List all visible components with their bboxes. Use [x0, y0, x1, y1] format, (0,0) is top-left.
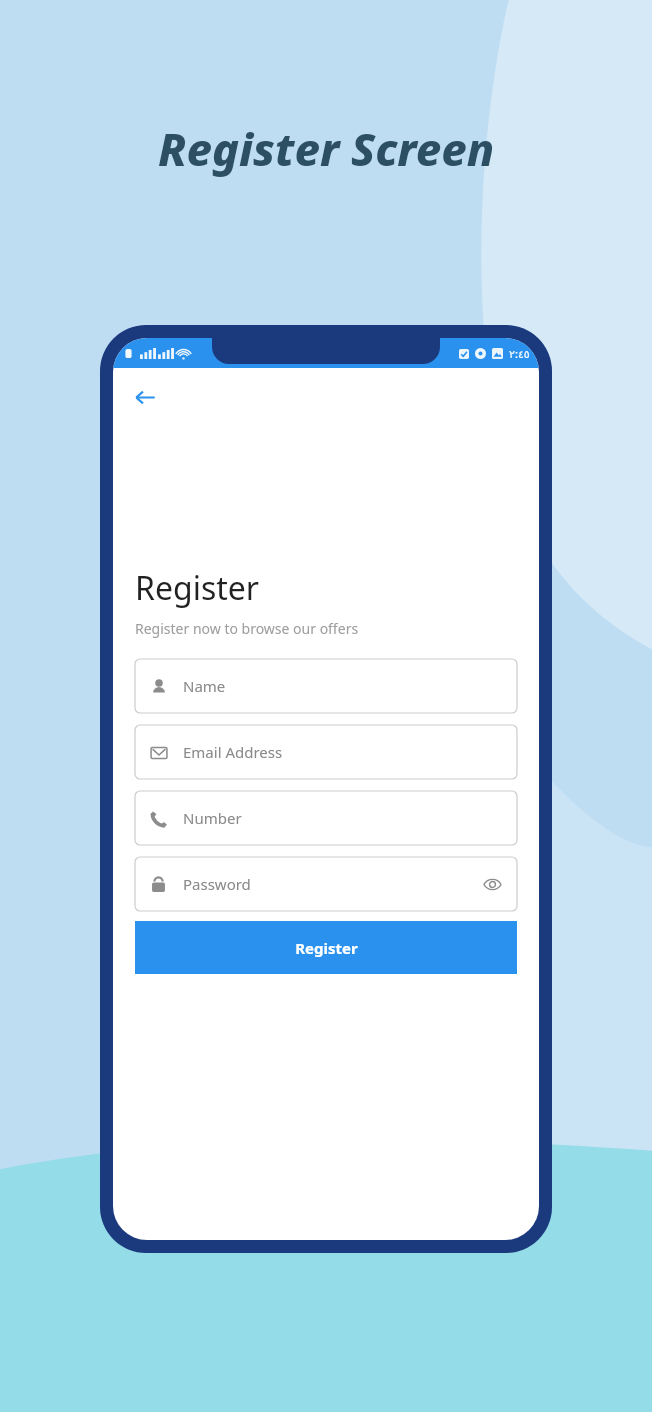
button[interactable]: Name	[135, 659, 517, 713]
button[interactable]: Back	[135, 380, 169, 414]
button[interactable]: Password	[135, 857, 517, 911]
staticText: Password	[183, 874, 251, 894]
button[interactable]: Number	[135, 791, 517, 845]
staticText: Register now to browse our offers	[135, 619, 359, 638]
staticText: ٢:٤٥	[509, 346, 530, 361]
staticText: Email Address	[183, 742, 283, 762]
staticText: Register	[135, 566, 260, 610]
button[interactable]: Register	[135, 921, 517, 974]
button[interactable]: Show password	[482, 874, 503, 895]
staticText: Register Screen	[158, 118, 495, 179]
staticText: Name	[183, 676, 226, 696]
staticText: Register	[295, 938, 358, 958]
staticText: Number	[183, 808, 242, 828]
button[interactable]: Email Address	[135, 725, 517, 779]
